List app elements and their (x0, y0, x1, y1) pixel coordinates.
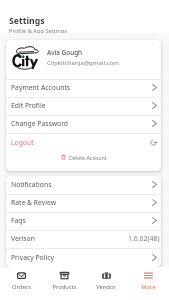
staticText: Edit Profile (11, 101, 46, 110)
button[interactable]: Faqs (6, 213, 161, 230)
button[interactable]: Vendor (85, 272, 127, 295)
button[interactable]: Privacy Policy (6, 249, 161, 267)
staticText: Notifications (11, 180, 52, 189)
staticText: Citykitchenja@gmail.com (47, 58, 120, 66)
staticText: Privacy Policy (11, 253, 54, 262)
button[interactable]: Avia Gough (6, 40, 161, 79)
other: Logout (150, 139, 157, 146)
staticText: Rate & Review (11, 198, 57, 207)
staticText: Products (52, 283, 77, 291)
button[interactable]: Payment Accounts (6, 80, 161, 97)
button[interactable]: Logout (6, 134, 161, 152)
button[interactable]: Delete Account (6, 152, 161, 171)
staticText: Faqs (11, 216, 26, 225)
staticText: Vendor (96, 283, 116, 291)
staticText: Logout (11, 138, 34, 147)
staticText: Delete Account (69, 154, 107, 161)
staticText: Change Password (11, 119, 69, 128)
staticText: Verison (11, 234, 35, 243)
button[interactable]: Orders (0, 272, 43, 295)
staticText: Profile & App Settings (9, 27, 68, 33)
staticText: Orders (12, 283, 31, 291)
button[interactable]: Rate & Review (6, 195, 161, 212)
button[interactable]: Change Password (6, 116, 161, 133)
button[interactable]: Edit Profile (6, 98, 161, 115)
staticText: More (141, 283, 156, 291)
button[interactable]: More (127, 272, 169, 295)
button[interactable]: Products (43, 272, 85, 295)
staticText: Payment Accounts (11, 83, 71, 92)
button[interactable]: Notifications (6, 176, 161, 194)
staticText: Settings (9, 15, 45, 27)
staticText: 1.6.62(48) (128, 234, 160, 243)
staticText: Avia Gough (47, 48, 83, 57)
